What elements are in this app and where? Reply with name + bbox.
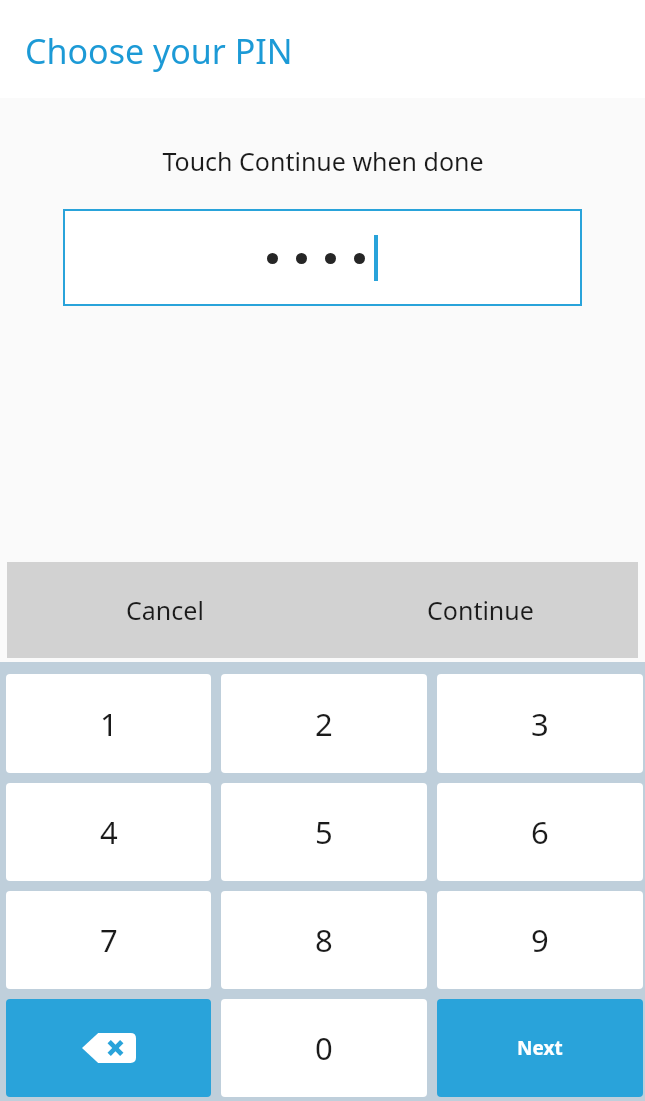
staticText: 4 [100, 811, 118, 853]
button[interactable]: 5 [221, 783, 427, 881]
staticText: Choose your PIN [25, 28, 293, 74]
staticText: Cancel [126, 593, 204, 627]
staticText: 5 [315, 811, 333, 853]
button[interactable]: 3 [437, 674, 643, 773]
staticText: 3 [531, 703, 549, 745]
button[interactable]: Next [437, 999, 643, 1097]
button[interactable]: 1 [6, 674, 211, 773]
button[interactable]: 8 [221, 891, 427, 989]
button[interactable]: 2 [221, 674, 427, 773]
button[interactable]: Continue [322, 562, 638, 658]
staticText: Continue [427, 593, 534, 627]
button[interactable]: 0 [221, 999, 427, 1097]
staticText: 8 [315, 919, 333, 961]
staticText: 6 [531, 811, 549, 853]
button[interactable]: 7 [6, 891, 211, 989]
button[interactable]: Backspace [6, 999, 211, 1097]
staticText: 2 [315, 703, 333, 745]
button[interactable]: 9 [437, 891, 643, 989]
staticText: 0 [315, 1027, 333, 1069]
button[interactable] [63, 209, 582, 306]
staticText: 1 [100, 703, 118, 745]
button[interactable]: 4 [6, 783, 211, 881]
button[interactable]: Cancel [7, 562, 322, 658]
button[interactable]: 6 [437, 783, 643, 881]
staticText: 9 [531, 919, 549, 961]
staticText: 7 [100, 919, 118, 961]
staticText: Next [517, 1035, 563, 1061]
staticText: Touch Continue when done [162, 144, 484, 178]
